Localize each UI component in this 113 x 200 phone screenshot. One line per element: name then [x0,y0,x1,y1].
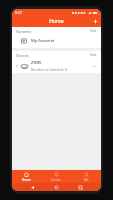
button[interactable]: My Favorite [12,35,101,47]
staticText: Number of channels: 8 [31,67,68,72]
staticText: ZN90 [31,60,42,66]
staticText: Sort [90,29,97,33]
staticText: Home [49,18,64,25]
button[interactable]: Home [12,170,41,183]
button[interactable]: More options [90,62,98,70]
button[interactable]: Scenes [41,170,71,183]
staticText: Devices [16,53,29,58]
staticText: Scenes [51,178,61,182]
staticText: Me [84,178,89,182]
button[interactable]: ZN90 [12,59,101,73]
button[interactable]: Add [90,16,101,27]
staticText: Favorites [16,29,32,34]
button[interactable]: Home [53,184,60,191]
button[interactable]: Recents [77,184,84,191]
staticText: 9:41 [15,10,22,15]
button[interactable]: Me [71,170,101,183]
button[interactable]: Back [29,184,36,191]
staticText: Home [22,178,31,182]
staticText: My Favorite [31,38,55,44]
staticText: Sort [90,53,97,57]
